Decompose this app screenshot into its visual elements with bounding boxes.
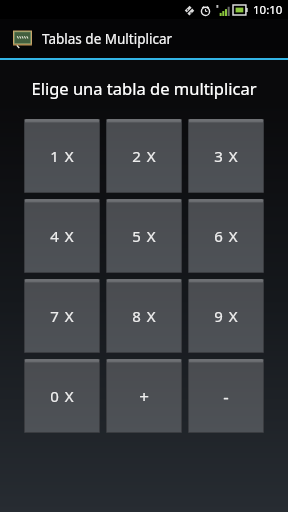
staticText: 9 X	[214, 306, 239, 326]
staticText: 7 X	[50, 306, 75, 326]
button[interactable]: 5 X	[106, 199, 182, 273]
staticText: -	[223, 385, 229, 408]
button[interactable]: 6 X	[188, 199, 264, 273]
other: App icon	[13, 29, 32, 48]
staticText: 10:10	[253, 2, 283, 18]
button[interactable]: 3 X	[188, 119, 264, 193]
button[interactable]: 1 X	[24, 119, 100, 193]
button[interactable]: 4 X	[24, 199, 100, 273]
staticText: Tablas de Multiplicar	[42, 30, 173, 48]
button[interactable]: 0 X	[24, 359, 100, 433]
button[interactable]: 2 X	[106, 119, 182, 193]
staticText: 6 X	[214, 226, 239, 246]
staticText: 2 X	[132, 146, 157, 166]
button[interactable]: 9 X	[188, 279, 264, 353]
staticText: 4 X	[50, 226, 75, 246]
staticText: 5 X	[132, 226, 157, 246]
staticText: +	[139, 385, 149, 408]
staticText: 3 X	[214, 146, 239, 166]
staticText: 8 X	[132, 306, 157, 326]
button[interactable]: -	[188, 359, 264, 433]
button[interactable]: 7 X	[24, 279, 100, 353]
staticText: 0 X	[50, 386, 75, 406]
button[interactable]: +	[106, 359, 182, 433]
staticText: 1 X	[50, 146, 75, 166]
staticText: Elige una tabla de multiplicar	[0, 77, 288, 99]
button[interactable]: 8 X	[106, 279, 182, 353]
